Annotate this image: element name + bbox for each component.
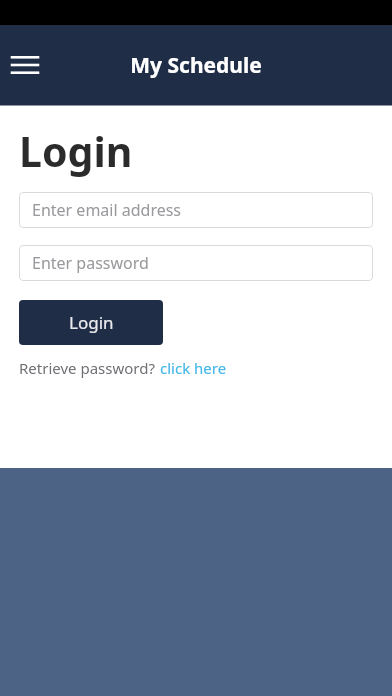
staticText: Enter email address xyxy=(32,199,182,221)
staticText: Retrieve password? xyxy=(19,358,155,378)
staticText: click here xyxy=(160,358,227,378)
button[interactable]: Enter email address xyxy=(19,192,373,228)
staticText: Login xyxy=(69,311,114,334)
button[interactable]: Open navigation menu xyxy=(6,43,44,87)
button[interactable]: Enter password xyxy=(19,245,373,281)
staticText: Enter password xyxy=(32,252,149,274)
button[interactable]: Login xyxy=(19,300,163,345)
button[interactable]: click here xyxy=(160,358,227,378)
staticText: My Schedule xyxy=(0,51,392,80)
staticText: Login xyxy=(19,123,133,179)
